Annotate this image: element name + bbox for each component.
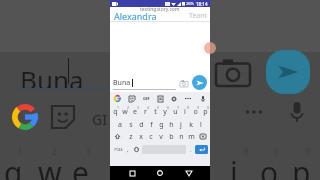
staticText: q xyxy=(4,152,23,180)
staticText: y xyxy=(163,107,167,117)
button[interactable]: h xyxy=(166,117,176,130)
staticText: j xyxy=(180,120,182,130)
staticText: 7 xyxy=(177,105,180,110)
staticText: z xyxy=(129,132,133,142)
button[interactable]: g xyxy=(156,117,166,130)
button[interactable]: c xyxy=(146,130,156,143)
staticText: g xyxy=(159,120,164,130)
button[interactable]: GIF xyxy=(141,93,151,103)
button[interactable]: More options xyxy=(183,93,193,103)
button[interactable]: v xyxy=(156,130,166,143)
button[interactable]: Send xyxy=(192,75,207,90)
button[interactable]: z xyxy=(125,130,136,143)
button[interactable]: Recents xyxy=(125,166,139,180)
button[interactable]: 9 xyxy=(190,104,200,117)
button[interactable]: 4 xyxy=(140,104,150,117)
button[interactable]: 5 xyxy=(150,104,160,117)
button[interactable]: . xyxy=(187,145,195,154)
staticText: e xyxy=(133,107,137,117)
staticText: 5 xyxy=(157,105,160,110)
staticText: 26% xyxy=(186,1,194,6)
staticText: 8 xyxy=(187,105,190,110)
button[interactable]: 1 xyxy=(110,104,120,117)
button[interactable]: Google search xyxy=(113,94,122,103)
button[interactable]: d xyxy=(136,117,146,130)
staticText: p xyxy=(292,152,311,180)
staticText: Alexandra xyxy=(114,10,157,22)
button[interactable]: f xyxy=(146,117,156,130)
staticText: x xyxy=(139,132,143,142)
button[interactable]: Backspace xyxy=(196,130,210,143)
button[interactable]: 2 xyxy=(120,104,130,117)
button[interactable]: k xyxy=(186,117,196,130)
button[interactable]: 7 xyxy=(170,104,180,117)
staticText: i xyxy=(230,152,238,180)
staticText: 2 xyxy=(127,105,130,110)
staticText: 3 xyxy=(86,146,91,157)
button[interactable]: x xyxy=(136,130,146,143)
staticText: k xyxy=(189,120,193,130)
staticText: 2 xyxy=(52,146,57,157)
staticText: w xyxy=(38,152,62,180)
button[interactable]: Buna xyxy=(113,76,176,90)
staticText: e xyxy=(72,152,89,180)
button[interactable]: Back xyxy=(182,166,196,180)
button[interactable]: Voice input xyxy=(198,94,207,103)
button[interactable]: Emoji xyxy=(132,145,141,154)
staticText: GIF xyxy=(143,96,150,101)
button[interactable]: Camera xyxy=(179,78,189,88)
staticText: 9 xyxy=(274,146,279,157)
button[interactable]: Shift xyxy=(110,130,125,143)
staticText: n xyxy=(179,132,184,142)
button[interactable]: 8 xyxy=(180,104,190,117)
staticText: , xyxy=(127,146,129,154)
staticText: 3 xyxy=(137,105,140,110)
staticText: v xyxy=(159,132,163,142)
staticText: 0 xyxy=(207,105,210,110)
staticText: 4 xyxy=(147,105,150,110)
button[interactable]: 3 xyxy=(130,104,140,117)
staticText: 6 xyxy=(167,105,170,110)
staticText: o xyxy=(260,152,279,180)
staticText: Team xyxy=(189,11,207,21)
staticText: l xyxy=(200,120,202,130)
button[interactable]: , xyxy=(124,145,132,154)
button[interactable]: l xyxy=(196,117,206,130)
staticText: b xyxy=(169,132,174,142)
staticText: 1 xyxy=(117,105,120,110)
button[interactable]: 6 xyxy=(160,104,170,117)
staticText: h xyxy=(169,120,174,130)
staticText: s xyxy=(129,120,133,130)
staticText: m xyxy=(188,132,195,142)
button[interactable]: s xyxy=(125,117,136,130)
staticText: a xyxy=(118,120,122,130)
button[interactable]: 0 xyxy=(200,104,210,117)
staticText: r xyxy=(144,107,147,117)
staticText: i xyxy=(184,107,186,117)
button[interactable]: Stickers xyxy=(127,94,136,103)
button[interactable]: m xyxy=(186,130,196,143)
staticText: q xyxy=(113,107,118,117)
button[interactable]: Enter xyxy=(195,145,208,154)
staticText: 18:14 xyxy=(196,1,208,7)
staticText: 1 xyxy=(18,146,23,157)
staticText: Buna xyxy=(113,78,131,88)
staticText: c xyxy=(149,132,153,142)
button[interactable]: Clipboard xyxy=(156,94,165,103)
button[interactable]: ?123 xyxy=(112,145,124,154)
staticText: 0 xyxy=(306,146,311,157)
button[interactable]: Home xyxy=(153,166,167,180)
button[interactable]: n xyxy=(176,130,186,143)
staticText: 8 xyxy=(244,146,249,157)
button[interactable]: b xyxy=(166,130,176,143)
staticText: p xyxy=(203,107,208,117)
button[interactable]: a xyxy=(114,117,125,130)
staticText: w xyxy=(122,107,128,117)
staticText: o xyxy=(193,107,198,117)
button[interactable]: Settings xyxy=(169,94,178,103)
staticText: t xyxy=(154,107,157,117)
staticText: d xyxy=(139,120,144,130)
button[interactable]: j xyxy=(176,117,186,130)
staticText: u xyxy=(173,107,178,117)
